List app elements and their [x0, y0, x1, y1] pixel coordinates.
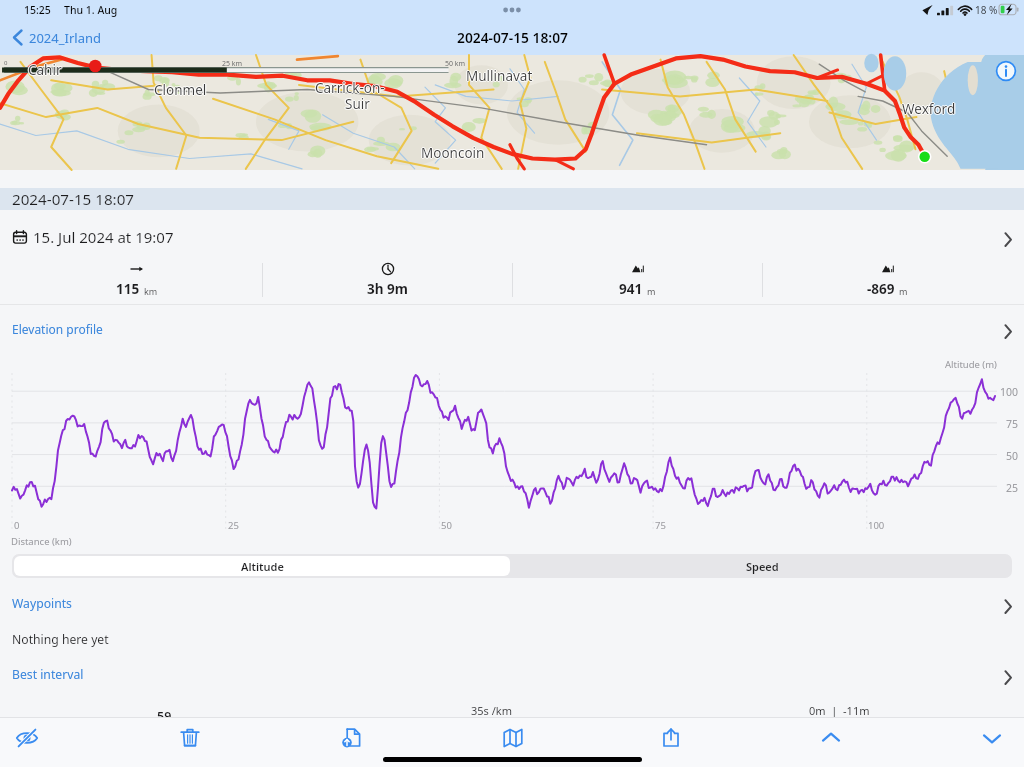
button[interactable]: Best interval — [0, 661, 1024, 688]
button[interactable]: Info — [995, 60, 1017, 82]
staticText: m — [899, 285, 908, 297]
staticText: Clonmel — [154, 81, 207, 99]
button[interactable]: Previous — [807, 718, 855, 762]
staticText: m — [647, 285, 656, 297]
staticText: Mooncoin — [421, 143, 485, 161]
staticText: 18 % — [975, 3, 998, 17]
button[interactable]: Speed — [512, 554, 1012, 578]
staticText: Mooncoin — [422, 144, 486, 162]
button[interactable]: 2024_Irland — [6, 23, 106, 52]
staticText: 15:25 — [24, 3, 51, 17]
staticText: Cahir — [27, 61, 61, 79]
staticText: Mullinavat — [465, 67, 532, 85]
staticText: Clonmel — [155, 81, 208, 99]
staticText: Wexford — [902, 101, 956, 119]
staticText: 59 — [157, 708, 172, 725]
button[interactable]: Altitude — [14, 556, 510, 576]
staticText: 50 km — [445, 59, 466, 69]
staticText: 100 — [868, 519, 885, 532]
staticText: Carrick-on- — [315, 78, 385, 96]
staticText: Distance (km) — [11, 535, 72, 548]
button[interactable]: 941 — [513, 258, 762, 302]
staticText: 50 — [441, 519, 452, 532]
staticText: Clonmel — [154, 80, 207, 98]
staticText: Wexford — [901, 100, 955, 118]
staticText: Elevation profile — [12, 321, 103, 337]
staticText: Altitude — [241, 559, 284, 574]
button[interactable]: Share — [647, 718, 695, 762]
button[interactable]: Show map — [489, 718, 537, 762]
staticText: km — [144, 285, 158, 297]
button[interactable]: Waypoints — [0, 590, 1024, 617]
staticText: 35s /km — [471, 703, 512, 718]
staticText: 3h 9m — [367, 280, 408, 298]
staticText: Suir — [346, 95, 371, 113]
staticText: Mooncoin — [420, 144, 484, 162]
staticText: Thu 1. Aug — [64, 3, 118, 17]
staticText: Mullinavat — [466, 66, 533, 84]
staticText: Carrick-on- — [314, 79, 384, 97]
button[interactable]: Export file — [328, 718, 376, 762]
staticText: Cahir — [29, 61, 63, 79]
staticText: Carrick-on- — [315, 79, 385, 97]
staticText: 15. Jul 2024 at 19:07 — [33, 227, 174, 247]
staticText: Wexford — [903, 100, 957, 118]
staticText: 25 km — [222, 59, 243, 69]
staticText: Carrick-on- — [316, 79, 386, 97]
button[interactable]: 3h 9m — [263, 258, 512, 302]
staticText: Clonmel — [154, 82, 207, 100]
button[interactable]: 115 — [12, 258, 262, 302]
staticText: Cahir — [28, 60, 62, 78]
staticText: 0m | -11m — [809, 703, 870, 718]
staticText: 2024-07-15 18:07 — [457, 28, 568, 47]
staticText: Wexford — [902, 99, 956, 117]
staticText: Mullinavat — [466, 68, 533, 86]
staticText: 0 — [14, 519, 20, 532]
button[interactable]: Elevation profile — [0, 305, 1024, 353]
staticText: 25 — [1006, 481, 1019, 495]
staticText: 115 — [116, 280, 140, 298]
staticText: 2024-07-15 18:07 — [12, 189, 135, 210]
button[interactable]: Delete — [166, 718, 214, 762]
staticText: Mooncoin — [421, 145, 485, 163]
staticText: 0 — [4, 59, 8, 67]
staticText: 25 — [228, 519, 239, 532]
staticText: Cahir — [28, 61, 62, 79]
staticText: Clonmel — [153, 81, 206, 99]
staticText: Mullinavat — [467, 67, 534, 85]
staticText: -869 — [867, 280, 895, 298]
staticText: Suir — [344, 95, 369, 113]
staticText: Nothing here yet — [12, 631, 109, 648]
staticText: Suir — [345, 96, 370, 114]
staticText: 100 — [1000, 385, 1019, 399]
staticText: Mooncoin — [421, 144, 485, 162]
staticText: 75 — [1006, 417, 1019, 431]
button[interactable]: 15. Jul 2024 at 19:07 — [0, 212, 1024, 262]
staticText: Carrick-on- — [315, 80, 385, 98]
staticText: Best interval — [12, 666, 84, 683]
staticText: 2024_Irland — [29, 29, 101, 47]
staticText: Altitude (m) — [945, 358, 997, 371]
staticText: 75 — [655, 519, 666, 532]
staticText: Waypoints — [12, 595, 72, 612]
staticText: 50 — [1006, 449, 1019, 463]
staticText: Mullinavat — [466, 67, 533, 85]
staticText: Suir — [345, 95, 370, 113]
staticText: Speed — [746, 559, 779, 574]
staticText: 941 — [619, 280, 643, 298]
button[interactable]: Hide track — [3, 718, 51, 762]
staticText: Wexford — [902, 100, 956, 118]
staticText: Suir — [345, 94, 370, 112]
button[interactable]: -869 — [763, 258, 1012, 302]
staticText: Cahir — [28, 62, 62, 80]
button[interactable]: Next — [968, 718, 1016, 762]
